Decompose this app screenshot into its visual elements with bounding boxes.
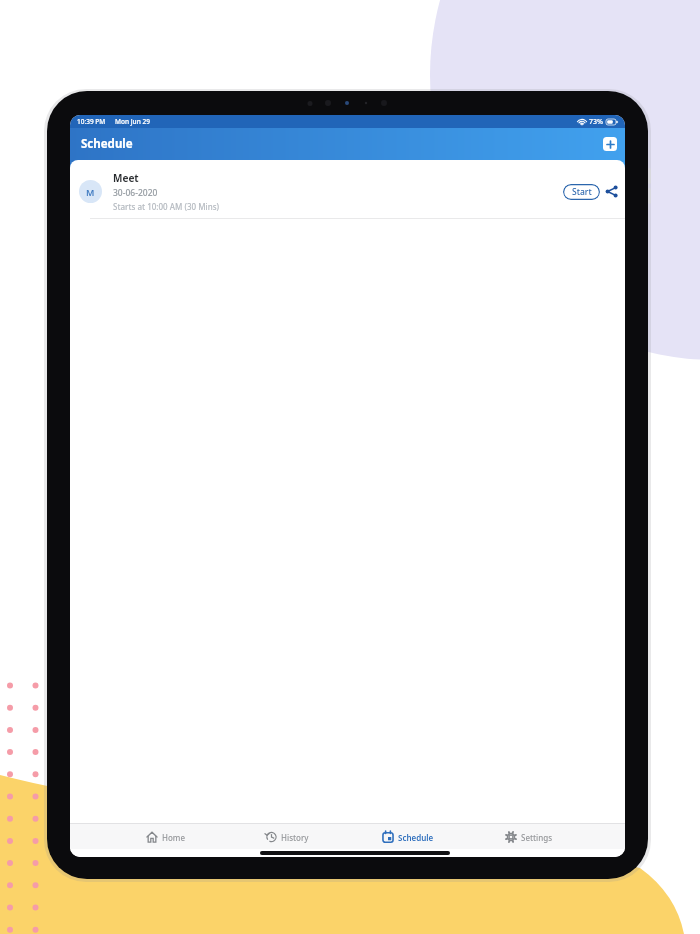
staticText: History bbox=[281, 832, 309, 843]
staticText: Home bbox=[162, 832, 186, 843]
staticText: Starts at 10:00 AM (30 Mins) bbox=[113, 201, 220, 212]
button[interactable] bbox=[605, 185, 618, 198]
button[interactable]: M bbox=[79, 165, 618, 218]
button[interactable]: Schedule bbox=[347, 824, 468, 849]
staticText: Schedule bbox=[81, 136, 133, 152]
staticText: Schedule bbox=[398, 832, 434, 843]
staticText: Mon Jun 29 bbox=[115, 117, 150, 126]
staticText: M bbox=[86, 186, 95, 198]
button[interactable]: Home bbox=[106, 824, 226, 849]
button[interactable]: Start bbox=[563, 184, 600, 200]
button[interactable]: Settings bbox=[468, 824, 589, 849]
staticText: Meet bbox=[113, 171, 139, 185]
button[interactable]: History bbox=[226, 824, 347, 849]
staticText: Settings bbox=[521, 832, 553, 843]
staticText: 73% bbox=[589, 117, 603, 127]
staticText: Start bbox=[572, 186, 592, 198]
button[interactable] bbox=[603, 137, 617, 151]
staticText: 30-06-2020 bbox=[113, 187, 158, 199]
staticText: 10:39 PM bbox=[77, 117, 106, 126]
